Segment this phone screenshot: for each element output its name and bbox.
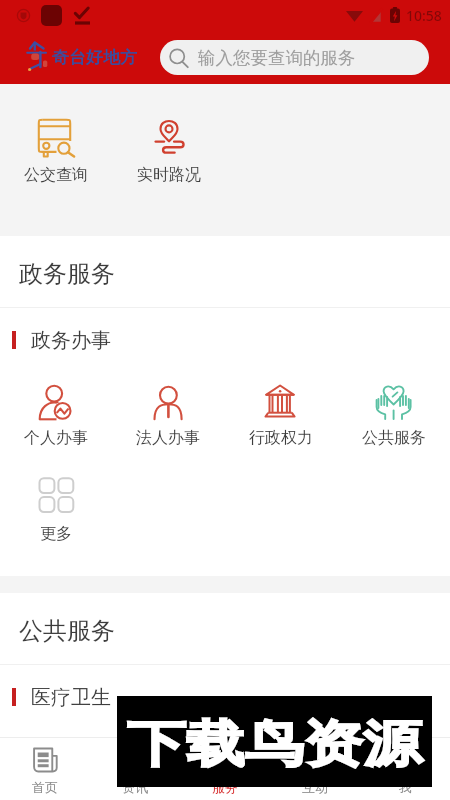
staticText: 互动	[302, 779, 328, 795]
staticText: 行政权力	[249, 428, 313, 448]
staticText: 更多	[40, 524, 72, 544]
button[interactable]: 公共服务	[337, 371, 450, 467]
button[interactable]: 法人办事	[112, 371, 224, 467]
staticText: 我	[399, 779, 412, 795]
staticText: 法人办事	[136, 428, 200, 448]
button[interactable]: 互动	[270, 738, 360, 800]
staticText: 政务服务	[19, 259, 115, 289]
button[interactable]: 实时路况	[112, 84, 225, 236]
staticText: 首页	[32, 779, 58, 795]
staticText: 服务	[212, 779, 238, 795]
staticText: 奇台好地方	[52, 47, 137, 68]
button[interactable]: 公交查询	[0, 84, 112, 236]
button[interactable]: 输入您要查询的服务	[160, 40, 429, 75]
staticText: 输入您要查询的服务	[198, 47, 356, 69]
button[interactable]: 我	[360, 738, 450, 800]
staticText: 公交查询	[24, 165, 88, 185]
staticText: 公共服务	[19, 616, 115, 646]
staticText: 10:58	[406, 6, 442, 25]
button[interactable]: 个人办事	[0, 371, 112, 467]
button[interactable]: 首页	[0, 738, 90, 800]
staticText: 实时路况	[137, 165, 201, 185]
staticText: 医疗卫生	[31, 685, 111, 710]
staticText: 个人办事	[24, 428, 88, 448]
staticText: 公共服务	[362, 428, 426, 448]
button[interactable]: 更多	[0, 467, 112, 563]
button[interactable]: 服务	[180, 738, 270, 800]
staticText: 下载鸟资源	[127, 713, 422, 775]
button[interactable]: 资讯	[90, 738, 180, 800]
other: Logo	[22, 40, 48, 74]
staticText: 资讯	[122, 779, 148, 795]
staticText: 政务办事	[31, 328, 111, 353]
button[interactable]: 行政权力	[224, 371, 337, 467]
